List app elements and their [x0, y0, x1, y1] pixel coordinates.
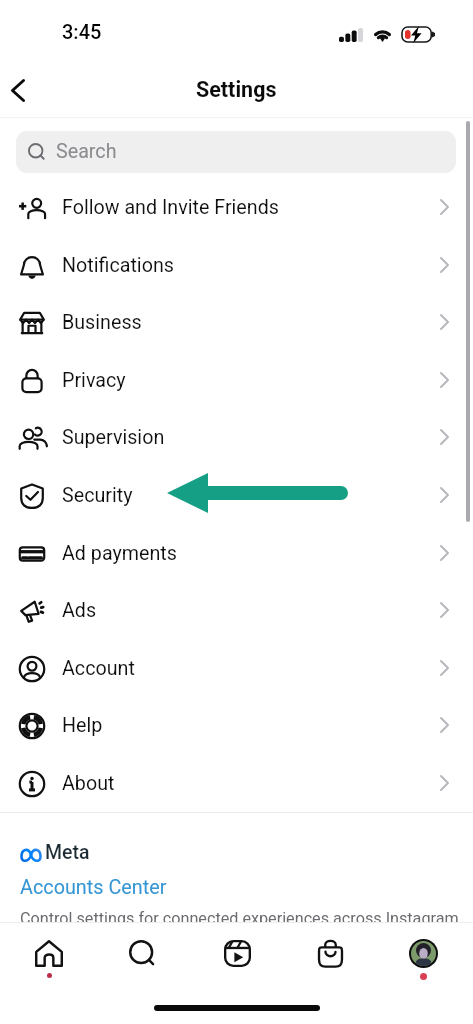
- button[interactable]: Search: [16, 131, 456, 173]
- button[interactable]: Back: [0, 67, 46, 113]
- button[interactable]: Ad payments: [0, 525, 473, 583]
- button[interactable]: Accounts Center: [20, 876, 167, 899]
- staticText: Security: [62, 484, 133, 507]
- staticText: 3:45: [62, 20, 102, 43]
- staticText: Notifications: [62, 254, 174, 277]
- staticText: Help: [62, 714, 103, 737]
- button[interactable]: Search: [118, 938, 166, 983]
- button[interactable]: Home: [25, 938, 73, 983]
- button[interactable]: Reels: [213, 938, 261, 983]
- button[interactable]: Security: [0, 467, 473, 525]
- button[interactable]: Notifications: [0, 237, 473, 295]
- button[interactable]: Account: [0, 640, 473, 698]
- staticText: Supervision: [62, 426, 165, 449]
- staticText: About: [62, 772, 115, 795]
- staticText: Ads: [62, 599, 97, 622]
- button[interactable]: Help: [0, 697, 473, 755]
- button[interactable]: Supervision: [0, 409, 473, 467]
- staticText: Control settings for connected experienc…: [20, 909, 459, 928]
- staticText: Ad payments: [62, 542, 177, 565]
- staticText: Settings: [196, 77, 277, 102]
- staticText: Privacy: [62, 369, 126, 392]
- button[interactable]: About: [0, 755, 473, 813]
- button[interactable]: Privacy: [0, 352, 473, 410]
- button[interactable]: Follow and Invite Friends: [0, 179, 473, 237]
- staticText: Account: [62, 657, 135, 680]
- staticText: Business: [62, 311, 142, 334]
- button[interactable]: Shop: [306, 938, 354, 983]
- staticText: Follow and Invite Friends: [62, 196, 279, 219]
- button[interactable]: Ads: [0, 582, 473, 640]
- staticText: Meta: [45, 841, 90, 864]
- button[interactable]: Profile: [399, 938, 447, 983]
- button[interactable]: Business: [0, 294, 473, 352]
- staticText: Search: [56, 140, 117, 163]
